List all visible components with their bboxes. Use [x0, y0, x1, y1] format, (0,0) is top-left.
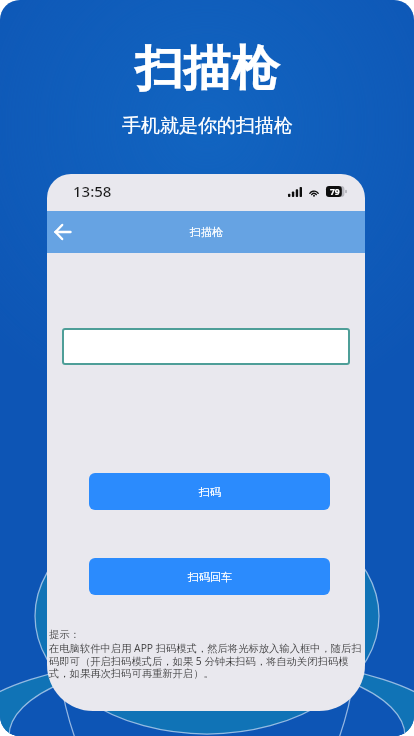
- button[interactable]: 扫码: [89, 473, 330, 510]
- button[interactable]: [62, 328, 350, 365]
- staticText: 扫描枪: [190, 225, 223, 239]
- staticText: 79: [330, 186, 340, 197]
- staticText: 13:58: [73, 181, 112, 201]
- button[interactable]: 扫码回车: [89, 558, 330, 595]
- staticText: 手机就是你的扫描枪: [122, 114, 293, 138]
- staticText: 提示：: [49, 628, 80, 641]
- staticText: 在电脑软件中启用 APP 扫码模式，然后将光标放入输入框中，随后扫码即可（开启扫…: [49, 641, 363, 680]
- staticText: 扫码: [199, 485, 221, 499]
- staticText: 扫码回车: [188, 570, 232, 584]
- button[interactable]: Back: [47, 217, 77, 247]
- staticText: 扫描枪: [135, 39, 279, 99]
